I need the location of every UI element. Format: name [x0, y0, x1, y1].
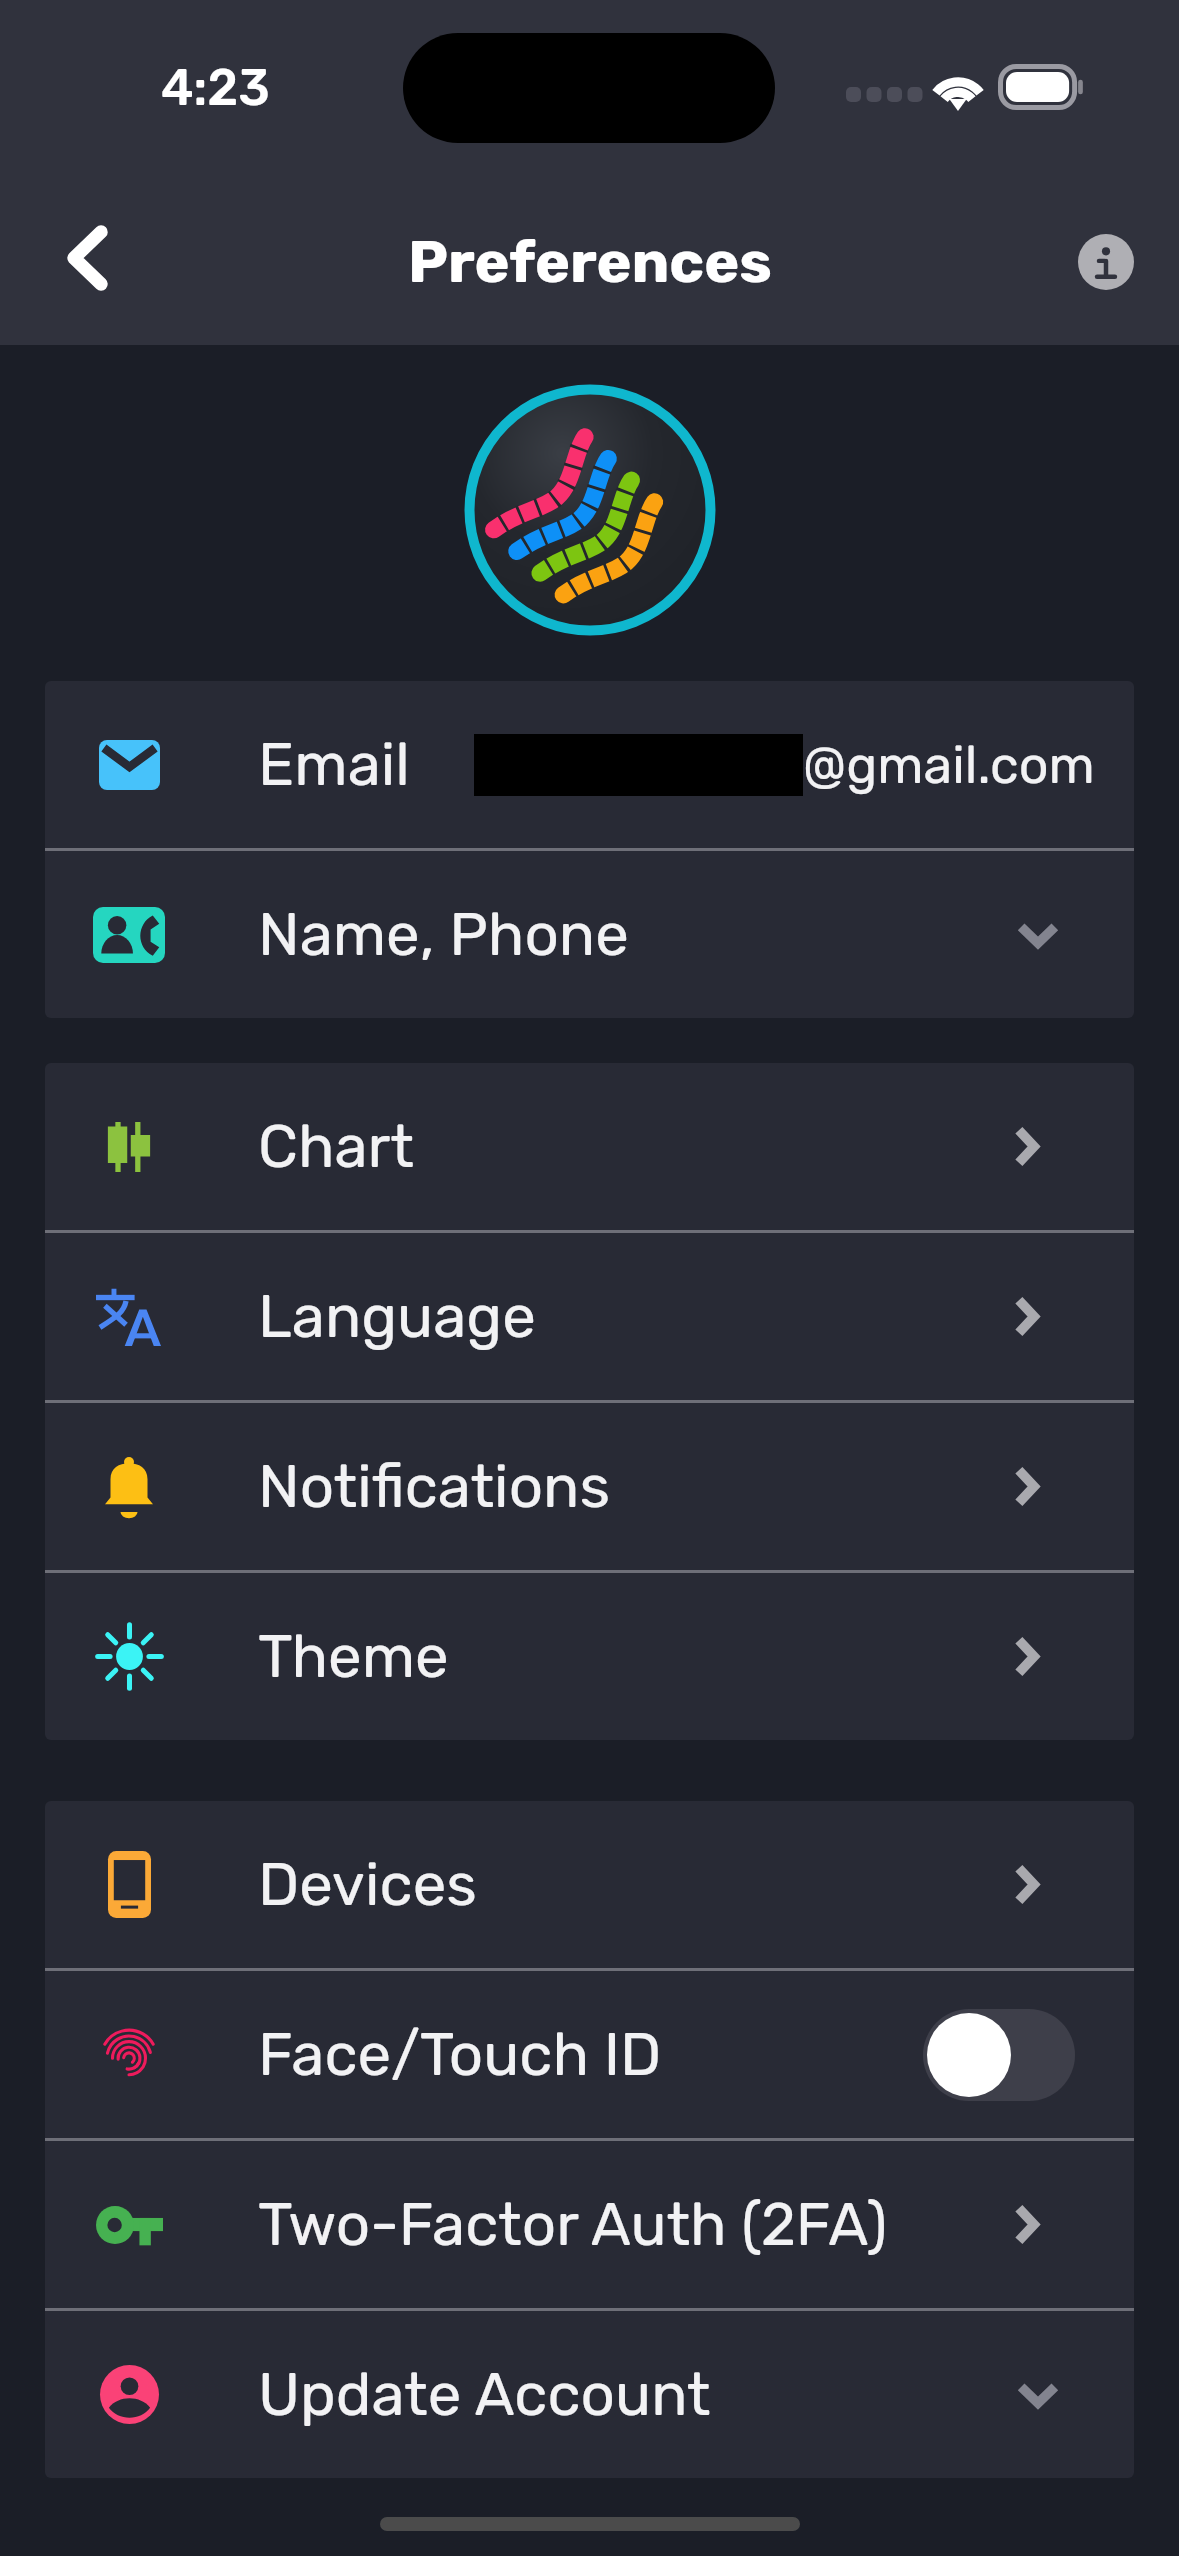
staticText: Language	[258, 1281, 536, 1352]
staticText: Face/Touch ID	[258, 2019, 662, 2090]
button[interactable]: Two-Factor Auth (2FA)	[45, 2141, 1134, 2308]
staticText: @gmail.com	[803, 734, 1095, 796]
button[interactable]: Chart	[45, 1063, 1134, 1230]
staticText: Theme	[258, 1621, 449, 1692]
button[interactable]: Notifications	[45, 1403, 1134, 1570]
button[interactable]: Face/Touch ID toggle	[923, 2009, 1075, 2101]
button[interactable]: Face/Touch ID	[45, 1971, 1134, 2138]
staticText: Devices	[258, 1849, 477, 1920]
button[interactable]: Email	[45, 681, 1134, 848]
staticText: Preferences	[408, 227, 772, 297]
button[interactable]: Name, Phone	[45, 851, 1134, 1018]
button[interactable]: Theme	[45, 1573, 1134, 1740]
staticText: Email	[258, 729, 410, 800]
staticText: 4:23	[161, 58, 270, 117]
staticText: Update Account	[258, 2359, 711, 2430]
staticText: Chart	[258, 1111, 414, 1182]
button[interactable]: Back	[32, 203, 142, 313]
button[interactable]: Info	[1051, 207, 1161, 317]
staticText: Name, Phone	[258, 899, 629, 970]
button[interactable]: Update Account	[45, 2311, 1134, 2478]
button[interactable]: Language	[45, 1233, 1134, 1400]
button[interactable]: Devices	[45, 1801, 1134, 1968]
staticText: Notifications	[258, 1451, 611, 1522]
staticText: Two-Factor Auth (2FA)	[258, 2189, 888, 2260]
